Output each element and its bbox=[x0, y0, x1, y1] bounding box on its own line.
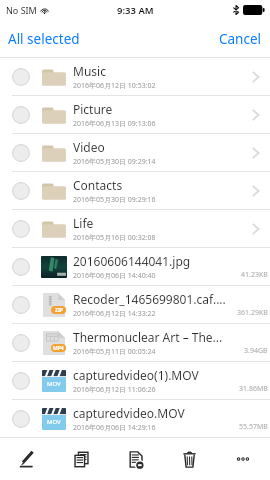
button[interactable]: 20160606144041.jpg bbox=[0, 248, 270, 286]
button[interactable]: Picture bbox=[0, 96, 270, 134]
button[interactable]: MOV bbox=[0, 400, 270, 438]
staticText: MP4 bbox=[53, 345, 64, 352]
staticText: 55.57MB bbox=[239, 422, 268, 432]
staticText: 2016年06月06日 14:40:40 bbox=[73, 271, 156, 281]
staticText: Video bbox=[73, 139, 105, 155]
staticText: MOV bbox=[47, 380, 61, 388]
staticText: 9:33 AM bbox=[117, 4, 154, 17]
staticText: 361.29KB bbox=[237, 308, 268, 318]
staticText: Picture bbox=[73, 101, 113, 117]
staticText: All selected bbox=[8, 30, 80, 48]
staticText: 2016年05月11日 00:05:24 bbox=[73, 347, 156, 357]
staticText: Music bbox=[73, 63, 106, 79]
staticText: 2016年05月30日 09:29:16 bbox=[73, 195, 156, 205]
button[interactable]: Cancel bbox=[211, 23, 270, 55]
staticText: Thermonuclear Art – The... bbox=[73, 329, 223, 345]
button[interactable]: Video bbox=[0, 134, 270, 172]
staticText: 2016年06月12日 11:06:26 bbox=[73, 385, 156, 395]
button[interactable]: ZIP bbox=[0, 286, 270, 324]
button[interactable]: Move bbox=[108, 438, 162, 480]
staticText: 2016年06月06日 14:29:16 bbox=[73, 423, 156, 433]
button[interactable]: Contacts bbox=[0, 172, 270, 210]
button[interactable]: MOV bbox=[0, 362, 270, 400]
button[interactable]: MP4 bbox=[0, 324, 270, 362]
staticText: MOV bbox=[47, 418, 61, 426]
button[interactable]: Music bbox=[0, 58, 270, 96]
staticText: 2016年05月30日 09:29:14 bbox=[73, 157, 156, 167]
button[interactable]: More bbox=[216, 438, 270, 480]
button[interactable]: All selected bbox=[0, 23, 88, 55]
staticText: 2016年06月13日 09:13:06 bbox=[73, 119, 156, 129]
staticText: 41.23KB bbox=[241, 270, 268, 280]
button[interactable]: Delete bbox=[162, 438, 216, 480]
staticText: 2016年06月12日 14:33:22 bbox=[73, 309, 156, 319]
button[interactable]: Life bbox=[0, 210, 270, 248]
staticText: 2016年06月12日 10:53:02 bbox=[73, 81, 156, 91]
button[interactable]: Rename bbox=[0, 438, 54, 480]
staticText: 2016年05月16日 00:32:08 bbox=[73, 233, 156, 243]
staticText: 31.86MB bbox=[239, 384, 268, 394]
staticText: Contacts bbox=[73, 177, 123, 193]
staticText: ZIP bbox=[55, 307, 63, 314]
staticText: 20160606144041.jpg bbox=[73, 253, 191, 269]
staticText: capturedvideo(1).MOV bbox=[73, 367, 199, 383]
button[interactable]: Copy bbox=[54, 438, 108, 480]
staticText: Life bbox=[73, 215, 94, 231]
staticText: Cancel bbox=[219, 30, 262, 48]
staticText: capturedvideo.MOV bbox=[73, 405, 185, 421]
staticText: No SIM bbox=[6, 4, 37, 16]
staticText: 3.94GB bbox=[244, 346, 268, 356]
staticText: Recoder_1465699801.caf.... bbox=[73, 291, 226, 307]
